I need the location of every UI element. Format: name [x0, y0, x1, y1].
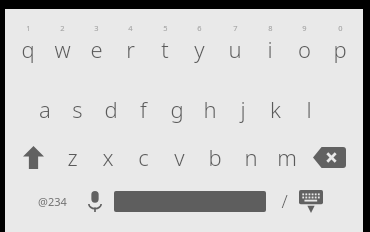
button[interactable]: @234	[33, 185, 71, 217]
staticText: v	[174, 142, 185, 172]
button[interactable]: 8	[252, 23, 287, 63]
button[interactable]: s	[61, 93, 94, 125]
button[interactable]: l	[292, 93, 325, 125]
staticText: i	[267, 34, 273, 63]
button[interactable]: k	[259, 93, 292, 125]
button[interactable]: 3	[79, 23, 113, 63]
staticText: k	[270, 94, 281, 124]
button[interactable]: Backspace	[305, 139, 353, 175]
staticText: n	[244, 142, 258, 172]
button[interactable]: c	[125, 139, 161, 175]
staticText: l	[306, 94, 312, 124]
button[interactable]: Space	[114, 191, 266, 212]
staticText: r	[126, 34, 135, 63]
staticText: 7	[233, 23, 238, 33]
button[interactable]: Hide keyboard	[296, 185, 326, 217]
button[interactable]: 7	[217, 23, 252, 63]
staticText: 5	[163, 23, 168, 33]
button[interactable]: v	[161, 139, 197, 175]
button[interactable]: x	[90, 139, 125, 175]
staticText: /	[281, 189, 288, 214]
button[interactable]: 9	[287, 23, 322, 63]
button[interactable]: Shift	[11, 139, 55, 175]
staticText: m	[277, 142, 297, 172]
button[interactable]: 0	[322, 23, 357, 63]
button[interactable]: 4	[113, 23, 147, 63]
staticText: z	[67, 142, 78, 172]
staticText: s	[72, 94, 83, 124]
button[interactable]: z	[55, 139, 90, 175]
button[interactable]: h	[193, 93, 226, 125]
button[interactable]: Voice input	[82, 185, 108, 217]
staticText: 8	[268, 23, 273, 33]
staticText: q	[21, 34, 35, 63]
button[interactable]: f	[127, 93, 160, 125]
staticText: j	[240, 94, 246, 124]
staticText: 4	[128, 23, 133, 33]
staticText: p	[333, 34, 347, 63]
button[interactable]: n	[233, 139, 269, 175]
staticText: u	[228, 34, 242, 63]
staticText: o	[298, 34, 311, 63]
staticText: e	[90, 34, 103, 63]
staticText: 9	[302, 23, 307, 33]
button[interactable]: j	[226, 93, 259, 125]
staticText: w	[54, 34, 71, 63]
staticText: 1	[26, 23, 31, 33]
staticText: h	[203, 94, 217, 124]
staticText: 0	[338, 23, 343, 33]
staticText: d	[104, 94, 118, 124]
staticText: b	[208, 142, 222, 172]
staticText: 3	[94, 23, 99, 33]
staticText: t	[161, 34, 169, 63]
button[interactable]: /	[274, 185, 294, 217]
button[interactable]: m	[269, 139, 305, 175]
button[interactable]: 6	[182, 23, 217, 63]
button[interactable]: 1	[11, 23, 45, 63]
button[interactable]: b	[197, 139, 233, 175]
staticText: y	[194, 34, 205, 63]
staticText: f	[140, 94, 147, 124]
staticText: c	[138, 142, 149, 172]
staticText: x	[102, 142, 114, 172]
button[interactable]: 5	[147, 23, 182, 63]
button[interactable]: g	[160, 93, 193, 125]
staticText: @234	[38, 194, 67, 209]
staticText: 6	[197, 23, 202, 33]
button[interactable]: 2	[45, 23, 79, 63]
button[interactable]: a	[28, 93, 61, 125]
staticText: 2	[60, 23, 65, 33]
button[interactable]: d	[94, 93, 127, 125]
staticText: g	[170, 94, 184, 124]
staticText: a	[39, 94, 51, 124]
